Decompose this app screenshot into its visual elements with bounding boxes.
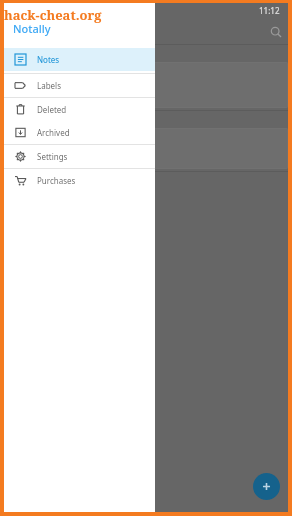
staticText: hack-cheat.org [4,6,102,24]
button[interactable] [14,128,288,169]
staticText: Settings [37,151,68,162]
staticText: Labels [37,80,62,91]
staticText: Archived [37,127,70,138]
staticText: Purchases [37,175,76,186]
staticText: Deleted [37,104,67,115]
button[interactable]: Purchases [4,169,155,192]
button[interactable]: Create new note [253,473,280,500]
button[interactable]: Search [264,20,288,44]
staticText: 11:12 [259,5,280,16]
button[interactable]: Labels [4,74,155,97]
button[interactable]: Settings [4,145,155,168]
staticText: Notes [37,54,60,65]
button[interactable] [14,62,288,108]
button[interactable]: Archived [4,121,155,144]
button[interactable]: Notes [4,48,155,71]
button[interactable]: Deleted [4,98,155,121]
staticText: Notally [13,21,51,36]
